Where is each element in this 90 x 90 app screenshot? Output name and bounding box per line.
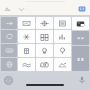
- button[interactable]: Undo: [1, 30, 17, 43]
- button[interactable]: Space: [72, 31, 89, 45]
- button[interactable]: Symbol 11: [36, 58, 53, 71]
- button[interactable]: Symbol 8: [36, 44, 53, 57]
- button[interactable]: Symbol 12: [54, 58, 71, 71]
- button[interactable]: Arrow key: [1, 17, 17, 29]
- button[interactable]: Predictive text: [3, 5, 12, 14]
- button[interactable]: Symbol 10: [18, 58, 35, 71]
- button[interactable]: Globe key: [1, 58, 17, 71]
- button[interactable]: Symbol 5: [36, 30, 53, 43]
- button[interactable]: Symbol 9: [54, 44, 71, 57]
- button[interactable]: Symbol 7: [18, 44, 35, 57]
- button[interactable]: Suggestion: [17, 5, 26, 14]
- button[interactable]: Switch keyboard: [2, 74, 14, 86]
- button[interactable]: Send: [77, 4, 87, 14]
- button[interactable]: Return: [72, 46, 89, 71]
- button[interactable]: Symbol 1: [18, 17, 35, 29]
- button[interactable]: Dictate: [76, 74, 88, 86]
- button[interactable]: Keyboard: [1, 44, 17, 57]
- button[interactable]: Delete: [72, 17, 89, 30]
- button[interactable]: Symbol 3: [54, 17, 71, 29]
- button[interactable]: Symbol 6: [54, 30, 71, 43]
- button[interactable]: Symbol 2: [36, 17, 53, 29]
- button[interactable]: Symbol 4: [18, 30, 35, 43]
